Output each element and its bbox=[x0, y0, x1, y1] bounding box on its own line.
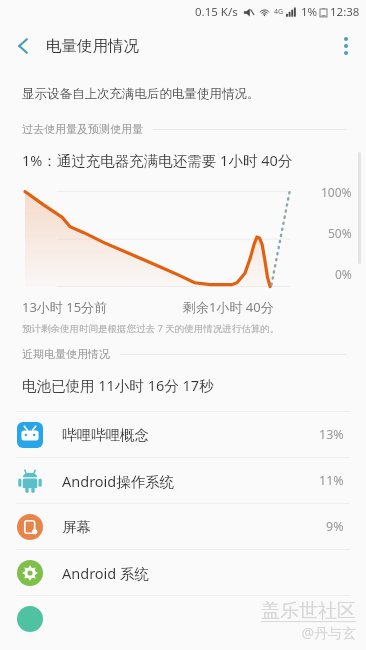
staticText: 1%：通过充电器充满电还需要 1小时 40分 bbox=[22, 150, 293, 170]
staticText: 1% bbox=[301, 4, 318, 20]
staticText: 9% bbox=[326, 518, 344, 535]
button[interactable] bbox=[0, 596, 366, 641]
button[interactable]: 哔哩哔哩概念 bbox=[0, 412, 366, 457]
staticText: 0% bbox=[335, 266, 352, 282]
staticText: Android 系统 bbox=[62, 563, 150, 583]
staticText: 100% bbox=[321, 184, 352, 200]
staticText: 剩余1小时 40分 bbox=[183, 298, 274, 316]
button[interactable]: 屏幕 bbox=[0, 504, 366, 549]
staticText: 0.15 K/s bbox=[195, 4, 238, 20]
staticText: 预计剩余使用时间是根据您过去 7 天的使用情况进行估算的。 bbox=[22, 322, 280, 335]
staticText: 电量使用情况 bbox=[46, 36, 139, 56]
staticText: 过去使用量及预测使用量 bbox=[22, 122, 143, 136]
button[interactable]: Android 系统 bbox=[0, 550, 366, 595]
staticText: 电池已使用 11小时 16分 17秒 bbox=[22, 375, 214, 395]
staticText: 哔哩哔哩概念 bbox=[62, 426, 149, 444]
staticText: 显示设备自上次充满电后的电量使用情况。 bbox=[22, 86, 260, 102]
staticText: 13小时 15分前 bbox=[22, 298, 108, 316]
staticText: @丹与玄 bbox=[301, 623, 356, 642]
staticText: 盖乐世社区 bbox=[261, 599, 356, 623]
button[interactable]: More options bbox=[326, 24, 366, 68]
staticText: 4G bbox=[274, 7, 284, 17]
staticText: 近期电量使用情况 bbox=[22, 347, 110, 361]
button[interactable]: Android操作系统 bbox=[0, 458, 366, 503]
staticText: 屏幕 bbox=[62, 518, 91, 536]
staticText: 50% bbox=[328, 225, 352, 241]
staticText: 12:38 bbox=[330, 4, 360, 20]
staticText: 11% bbox=[319, 472, 344, 489]
staticText: Android操作系统 bbox=[62, 471, 175, 491]
staticText: 13% bbox=[319, 426, 344, 443]
button[interactable]: Back bbox=[0, 24, 46, 68]
